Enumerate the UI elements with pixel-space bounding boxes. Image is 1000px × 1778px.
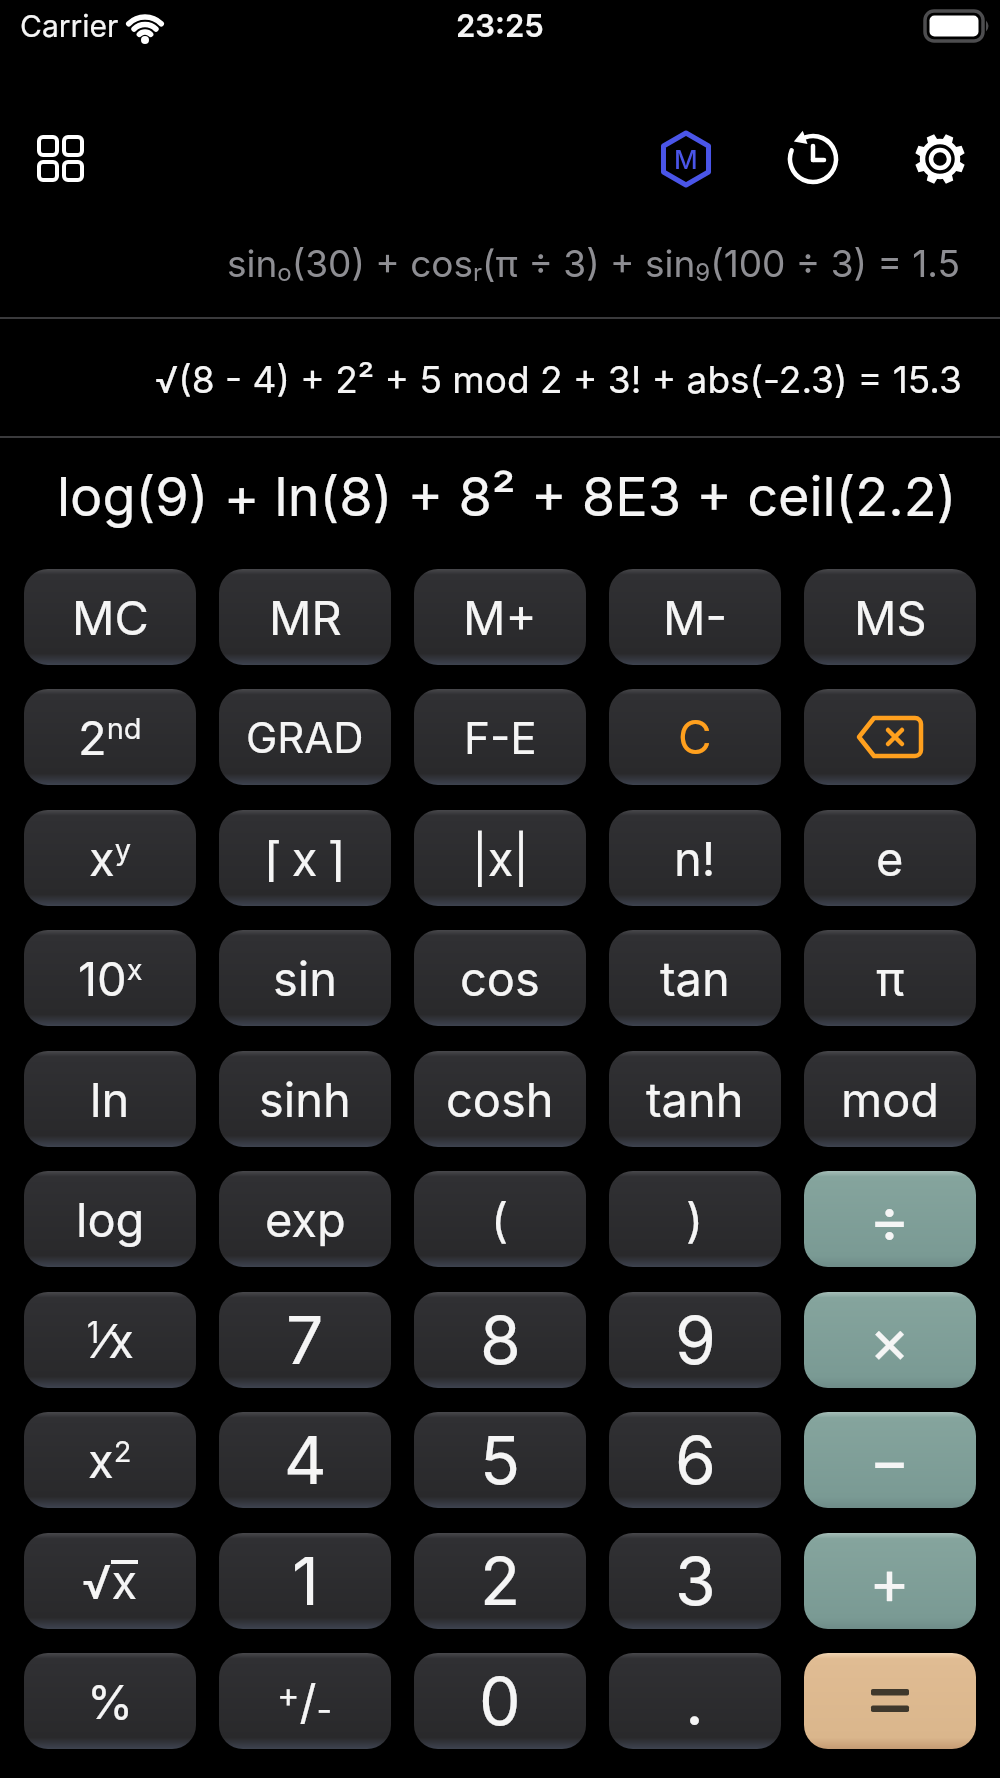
staticText: MR	[269, 589, 342, 646]
staticText: cos	[460, 950, 540, 1007]
button[interactable]: −	[804, 1412, 976, 1508]
staticText: sin	[273, 950, 337, 1007]
staticText: 23:25	[456, 7, 544, 45]
button[interactable]: π	[804, 930, 976, 1026]
staticText: (	[491, 1191, 509, 1248]
button[interactable]: 3	[609, 1533, 781, 1629]
button[interactable]: MR	[219, 569, 391, 665]
button[interactable]: |x|	[414, 810, 586, 906]
button[interactable]: √x	[24, 1533, 196, 1629]
button[interactable]: M-	[609, 569, 781, 665]
button[interactable]: F-E	[414, 689, 586, 785]
button[interactable]: cos	[414, 930, 586, 1026]
button[interactable]	[786, 132, 840, 186]
staticText: +	[869, 1544, 911, 1619]
button[interactable]	[914, 133, 966, 185]
staticText: 5	[480, 1420, 521, 1500]
button[interactable]: C	[609, 689, 781, 785]
button[interactable]: .	[609, 1653, 781, 1749]
button[interactable]: tanh	[609, 1051, 781, 1147]
button[interactable]: 9	[609, 1292, 781, 1388]
button[interactable]: 10x	[24, 930, 196, 1026]
button[interactable]: log	[24, 1171, 196, 1267]
button[interactable]: %	[24, 1653, 196, 1749]
button[interactable]: 0	[414, 1653, 586, 1749]
staticText: 9	[675, 1300, 716, 1380]
staticText: n!	[674, 830, 716, 887]
staticText: )	[686, 1191, 704, 1248]
button[interactable]: +/-	[219, 1653, 391, 1749]
button[interactable]: x2	[24, 1412, 196, 1508]
button[interactable]: 1	[219, 1533, 391, 1629]
button[interactable]: exp	[219, 1171, 391, 1267]
button[interactable]: 8	[414, 1292, 586, 1388]
button[interactable]	[804, 689, 976, 785]
button[interactable]: xy	[24, 810, 196, 906]
button[interactable]: sinh	[219, 1051, 391, 1147]
button[interactable]: )	[609, 1171, 781, 1267]
staticText: cosh	[446, 1071, 554, 1128]
staticText: 2nd	[78, 709, 142, 766]
staticText: 4	[284, 1420, 327, 1500]
staticText: 1⁄x	[87, 1312, 134, 1369]
staticText: √x	[82, 1553, 138, 1610]
button[interactable]: (	[414, 1171, 586, 1267]
button[interactable]: mod	[804, 1051, 976, 1147]
staticText: 6	[675, 1420, 716, 1500]
staticText: tan	[660, 950, 730, 1007]
button[interactable]: ⌈ x ⌉	[219, 810, 391, 906]
staticText: 7	[286, 1300, 324, 1380]
staticText: +/-	[277, 1673, 333, 1730]
staticText: √(8 - 4) + 2² + 5 mod 2 + 3! + abs(-2.3)…	[155, 357, 962, 402]
staticText: ×	[869, 1303, 911, 1378]
staticText: sino(30) + cosr(π ÷ 3) + sin9(100 ÷ 3) =…	[227, 241, 960, 287]
staticText: log(9) + ln(8) + 8² + 8E3 + ceil(2.2)	[57, 464, 957, 529]
staticText: M+	[463, 589, 537, 646]
button[interactable]: MS	[804, 569, 976, 665]
button[interactable]: ln	[24, 1051, 196, 1147]
button[interactable]: cosh	[414, 1051, 586, 1147]
button[interactable]: ×	[804, 1292, 976, 1388]
button[interactable]	[804, 1653, 976, 1749]
staticText: exp	[265, 1191, 346, 1248]
staticText: M-	[663, 589, 728, 646]
button[interactable]: MC	[24, 569, 196, 665]
staticText: 0	[479, 1661, 521, 1741]
button[interactable]: M	[657, 130, 715, 188]
staticText: F-E	[464, 711, 537, 764]
staticText: tanh	[646, 1071, 744, 1128]
button[interactable]: n!	[609, 810, 781, 906]
staticText: sinh	[259, 1071, 351, 1128]
button[interactable]: tan	[609, 930, 781, 1026]
button[interactable]: 6	[609, 1412, 781, 1508]
staticText: 2	[480, 1541, 521, 1621]
staticText: MS	[854, 589, 927, 646]
button[interactable]: 7	[219, 1292, 391, 1388]
button[interactable]: ÷	[804, 1171, 976, 1267]
button[interactable]: 5	[414, 1412, 586, 1508]
staticText: M	[674, 144, 698, 175]
staticText: %	[87, 1673, 134, 1730]
staticText: 8	[480, 1300, 521, 1380]
staticText: x2	[88, 1432, 132, 1489]
staticText: Carrier	[20, 8, 119, 44]
button[interactable]: M+	[414, 569, 586, 665]
staticText: log	[76, 1191, 145, 1248]
staticText: .	[685, 1661, 705, 1741]
staticText: −	[869, 1423, 911, 1498]
button[interactable]	[39, 137, 83, 181]
button[interactable]: 2	[414, 1533, 586, 1629]
staticText: e	[876, 830, 904, 887]
staticText: ÷	[869, 1182, 911, 1257]
button[interactable]: 2nd	[24, 689, 196, 785]
button[interactable]: GRAD	[219, 689, 391, 785]
button[interactable]: +	[804, 1533, 976, 1629]
button[interactable]: e	[804, 810, 976, 906]
staticText: 3	[675, 1541, 716, 1621]
staticText: MC	[72, 589, 149, 646]
button[interactable]: 4	[219, 1412, 391, 1508]
staticText: xy	[89, 830, 131, 887]
staticText: ⌈ x ⌉	[265, 830, 345, 887]
button[interactable]: sin	[219, 930, 391, 1026]
button[interactable]: 1⁄x	[24, 1292, 196, 1388]
